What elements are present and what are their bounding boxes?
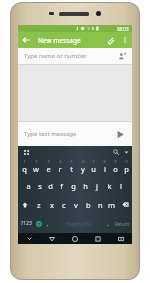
button[interactable]: c — [58, 195, 70, 214]
staticText: k — [107, 181, 112, 191]
staticText: j — [96, 181, 98, 191]
staticText: 3 — [47, 159, 50, 164]
button[interactable]: n — [94, 195, 106, 214]
staticText: 5 — [70, 159, 73, 164]
button[interactable]: m — [106, 195, 118, 214]
staticText: h — [83, 181, 88, 191]
staticText: t — [70, 164, 73, 174]
button[interactable]: z — [32, 195, 45, 214]
button[interactable]: Return — [112, 214, 132, 233]
button[interactable]: v — [70, 195, 82, 214]
button[interactable]: 6 — [77, 157, 88, 176]
button[interactable]: h — [79, 176, 91, 195]
staticText: e — [46, 164, 51, 174]
staticText: x — [50, 200, 54, 210]
staticText: v — [74, 200, 78, 210]
button[interactable]: Add contact — [114, 48, 130, 64]
staticText: q — [22, 164, 27, 174]
staticText: w — [33, 164, 39, 174]
button[interactable]: Recent apps — [86, 233, 109, 244]
staticText: ?123 — [21, 220, 32, 227]
button[interactable]: 7 — [88, 157, 99, 176]
button[interactable]: a — [23, 176, 34, 195]
staticText: New message — [38, 36, 81, 45]
button[interactable]: 8 — [99, 157, 110, 176]
button[interactable]: Shift — [18, 195, 32, 214]
button[interactable]: 9 — [110, 157, 121, 176]
button[interactable]: l — [115, 176, 127, 195]
button[interactable]: Emoji — [34, 214, 44, 233]
staticText: z — [37, 200, 41, 210]
staticText: g — [71, 181, 76, 191]
staticText: m — [108, 200, 116, 210]
staticText: 0 — [125, 159, 128, 164]
button[interactable]: 3 — [42, 157, 54, 176]
staticText: c — [62, 200, 66, 210]
staticText: 4 — [59, 159, 62, 164]
staticText: r — [58, 164, 62, 174]
staticText: English (US) — [66, 221, 91, 227]
button[interactable]: k — [103, 176, 115, 195]
button[interactable]: g — [67, 176, 79, 195]
staticText: f — [60, 181, 63, 191]
staticText: Return — [115, 221, 130, 227]
staticText: , — [47, 220, 49, 228]
button[interactable]: 5 — [66, 157, 77, 176]
button[interactable]: Backspace — [118, 195, 132, 214]
staticText: p — [124, 164, 129, 174]
button[interactable]: Send — [110, 124, 130, 144]
button[interactable]: Type name or number — [18, 48, 132, 64]
button[interactable]: Back — [18, 32, 34, 48]
staticText: . — [107, 220, 109, 228]
button[interactable]: , — [44, 214, 52, 233]
staticText: n — [98, 200, 103, 210]
staticText: s — [38, 181, 42, 191]
button[interactable]: Home — [63, 233, 86, 244]
button[interactable]: d — [45, 176, 56, 195]
staticText: 6 — [82, 159, 85, 164]
button[interactable]: f — [56, 176, 67, 195]
button[interactable]: Expand — [121, 147, 131, 157]
button[interactable]: x — [45, 195, 58, 214]
button[interactable]: 1 — [18, 157, 30, 176]
button[interactable]: Back — [40, 233, 63, 244]
staticText: 08:03 — [117, 26, 129, 32]
button[interactable]: Space — [52, 214, 104, 233]
staticText: 8 — [103, 159, 106, 164]
button[interactable]: 0 — [121, 157, 132, 176]
staticText: 9 — [114, 159, 117, 164]
staticText: l — [120, 181, 122, 191]
staticText: b — [86, 200, 91, 210]
button[interactable]: Attach — [102, 32, 118, 48]
staticText: d — [48, 181, 53, 191]
button[interactable]: Search — [111, 147, 121, 157]
button[interactable]: ?123 — [18, 214, 34, 233]
staticText: Type name or number — [24, 52, 87, 60]
button[interactable]: Screenshot — [109, 233, 132, 244]
button[interactable]: b — [82, 195, 94, 214]
button[interactable]: 2 — [30, 157, 42, 176]
button[interactable]: s — [34, 176, 45, 195]
staticText: y — [81, 164, 85, 174]
button[interactable]: Type text message — [18, 122, 132, 146]
button[interactable]: . — [104, 214, 112, 233]
staticText: u — [91, 164, 96, 174]
staticText: a — [26, 181, 31, 191]
staticText: 2 — [35, 159, 38, 164]
button[interactable]: j — [91, 176, 103, 195]
button[interactable]: More options — [118, 33, 132, 47]
button[interactable]: Keyboard menu — [21, 147, 31, 157]
staticText: 1 — [23, 159, 26, 164]
staticText: 7 — [92, 159, 95, 164]
staticText: o — [113, 164, 118, 174]
staticText: i — [104, 164, 106, 174]
button[interactable]: 4 — [54, 157, 66, 176]
button[interactable]: Hide keyboard — [18, 233, 40, 244]
staticText: Type text message — [24, 130, 77, 138]
